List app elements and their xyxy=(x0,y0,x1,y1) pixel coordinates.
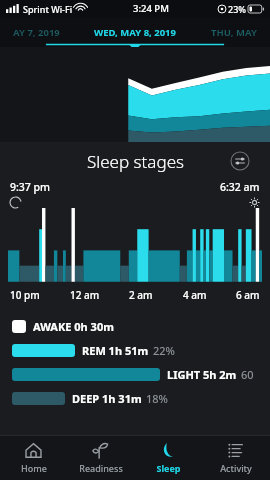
button[interactable]: Readiness xyxy=(67,436,134,480)
staticText: AY 7, 2019 xyxy=(13,26,60,39)
staticText: 23% xyxy=(228,3,246,15)
staticText: 6:32 am xyxy=(220,180,260,194)
staticText: Home xyxy=(21,462,47,474)
button[interactable]: WED, MAY 8, 2019 xyxy=(73,17,197,47)
button[interactable]: LIGHT 5h 2m xyxy=(0,362,270,386)
staticText: 60% xyxy=(241,367,258,382)
staticText: Sprint Wi-Fi xyxy=(23,3,73,15)
staticText: DEEP 1h 31m xyxy=(72,391,142,406)
staticText: 10 pm xyxy=(10,288,40,302)
staticText: AWAKE 0h 30m xyxy=(33,319,114,334)
button[interactable]: Home xyxy=(0,436,67,480)
button[interactable]: Activity xyxy=(202,436,270,480)
staticText: 3:24 PM xyxy=(133,2,169,15)
button[interactable]: THU, MAY xyxy=(197,17,270,47)
staticText: 12 am xyxy=(70,288,100,302)
staticText: LIGHT 5h 2m xyxy=(167,367,237,382)
staticText: 18% xyxy=(146,391,168,406)
staticText: 9:37 pm xyxy=(10,180,51,194)
button[interactable]: AWAKE 0h 30m xyxy=(0,314,270,338)
staticText: Readiness xyxy=(79,462,123,474)
staticText: 4 am xyxy=(183,288,207,302)
button[interactable]: Adjust sleep stages xyxy=(228,149,252,173)
button[interactable]: AY 7, 2019 xyxy=(0,17,73,47)
staticText: 2 am xyxy=(129,288,153,302)
button[interactable]: REM 1h 51m xyxy=(0,338,270,362)
button[interactable]: Sleep xyxy=(134,436,202,480)
staticText: Sleep xyxy=(156,462,181,474)
staticText: 22% xyxy=(153,343,175,358)
staticText: Activity xyxy=(220,462,252,474)
staticText: 6 am xyxy=(236,288,260,302)
staticText: THU, MAY xyxy=(211,26,257,39)
staticText: Sleep stages xyxy=(87,150,184,173)
staticText: REM 1h 51m xyxy=(82,343,149,358)
button[interactable]: DEEP 1h 31m xyxy=(0,386,270,410)
staticText: WED, MAY 8, 2019 xyxy=(94,26,176,39)
